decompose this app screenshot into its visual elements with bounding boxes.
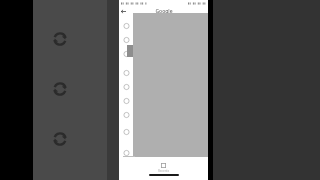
button[interactable]: Setting [121,35,132,45]
button[interactable]: Refresh [50,79,70,99]
button[interactable]: Setting [121,68,132,78]
button[interactable]: Recents [160,162,167,169]
staticText: Google [155,8,173,15]
button[interactable]: Refresh [33,0,107,180]
button[interactable]: Setting [121,49,132,59]
button[interactable]: Setting [121,110,132,120]
button[interactable]: Back [119,7,128,16]
staticText: Recents [158,169,170,173]
button[interactable]: Refresh [50,129,70,149]
button[interactable]: Setting [121,96,132,106]
button[interactable]: Setting [121,148,132,158]
button[interactable]: Setting [121,82,132,92]
button[interactable]: Refresh [50,29,70,49]
button[interactable]: Setting [121,127,132,137]
button[interactable]: Setting [121,21,132,31]
